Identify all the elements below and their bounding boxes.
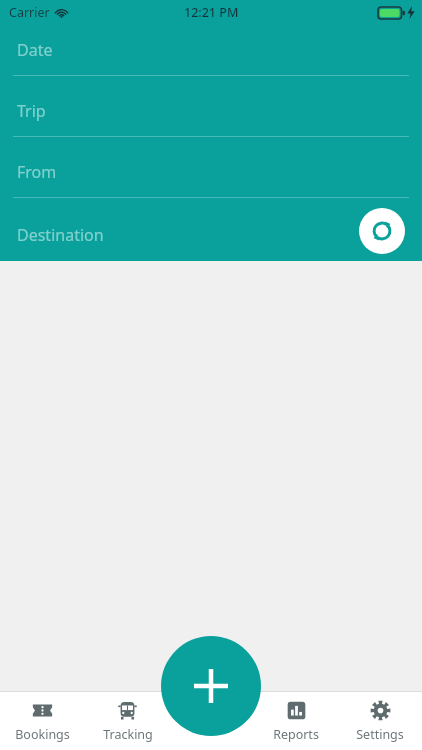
button[interactable]: Bookings bbox=[0, 692, 85, 750]
button[interactable]: Destination bbox=[0, 208, 422, 261]
staticText: 12:21 PM bbox=[184, 4, 239, 21]
button[interactable]: From bbox=[0, 147, 422, 208]
staticText: Date bbox=[17, 39, 53, 61]
button[interactable]: Trip bbox=[0, 86, 422, 147]
staticText: Settings bbox=[356, 726, 404, 743]
staticText: Carrier bbox=[9, 4, 50, 21]
button[interactable]: Date bbox=[0, 25, 422, 86]
staticText: Tracking bbox=[103, 726, 153, 743]
button[interactable]: Add booking bbox=[161, 636, 261, 736]
button[interactable]: Tracking bbox=[85, 692, 170, 750]
staticText: Trip bbox=[17, 100, 46, 122]
staticText: Destination bbox=[17, 224, 104, 246]
button[interactable]: Settings bbox=[338, 692, 422, 750]
staticText: Reports bbox=[273, 726, 319, 743]
staticText: Bookings bbox=[15, 726, 70, 743]
staticText: From bbox=[17, 161, 57, 183]
button[interactable]: Reports bbox=[254, 692, 338, 750]
button[interactable]: Swap from and destination bbox=[359, 208, 405, 254]
